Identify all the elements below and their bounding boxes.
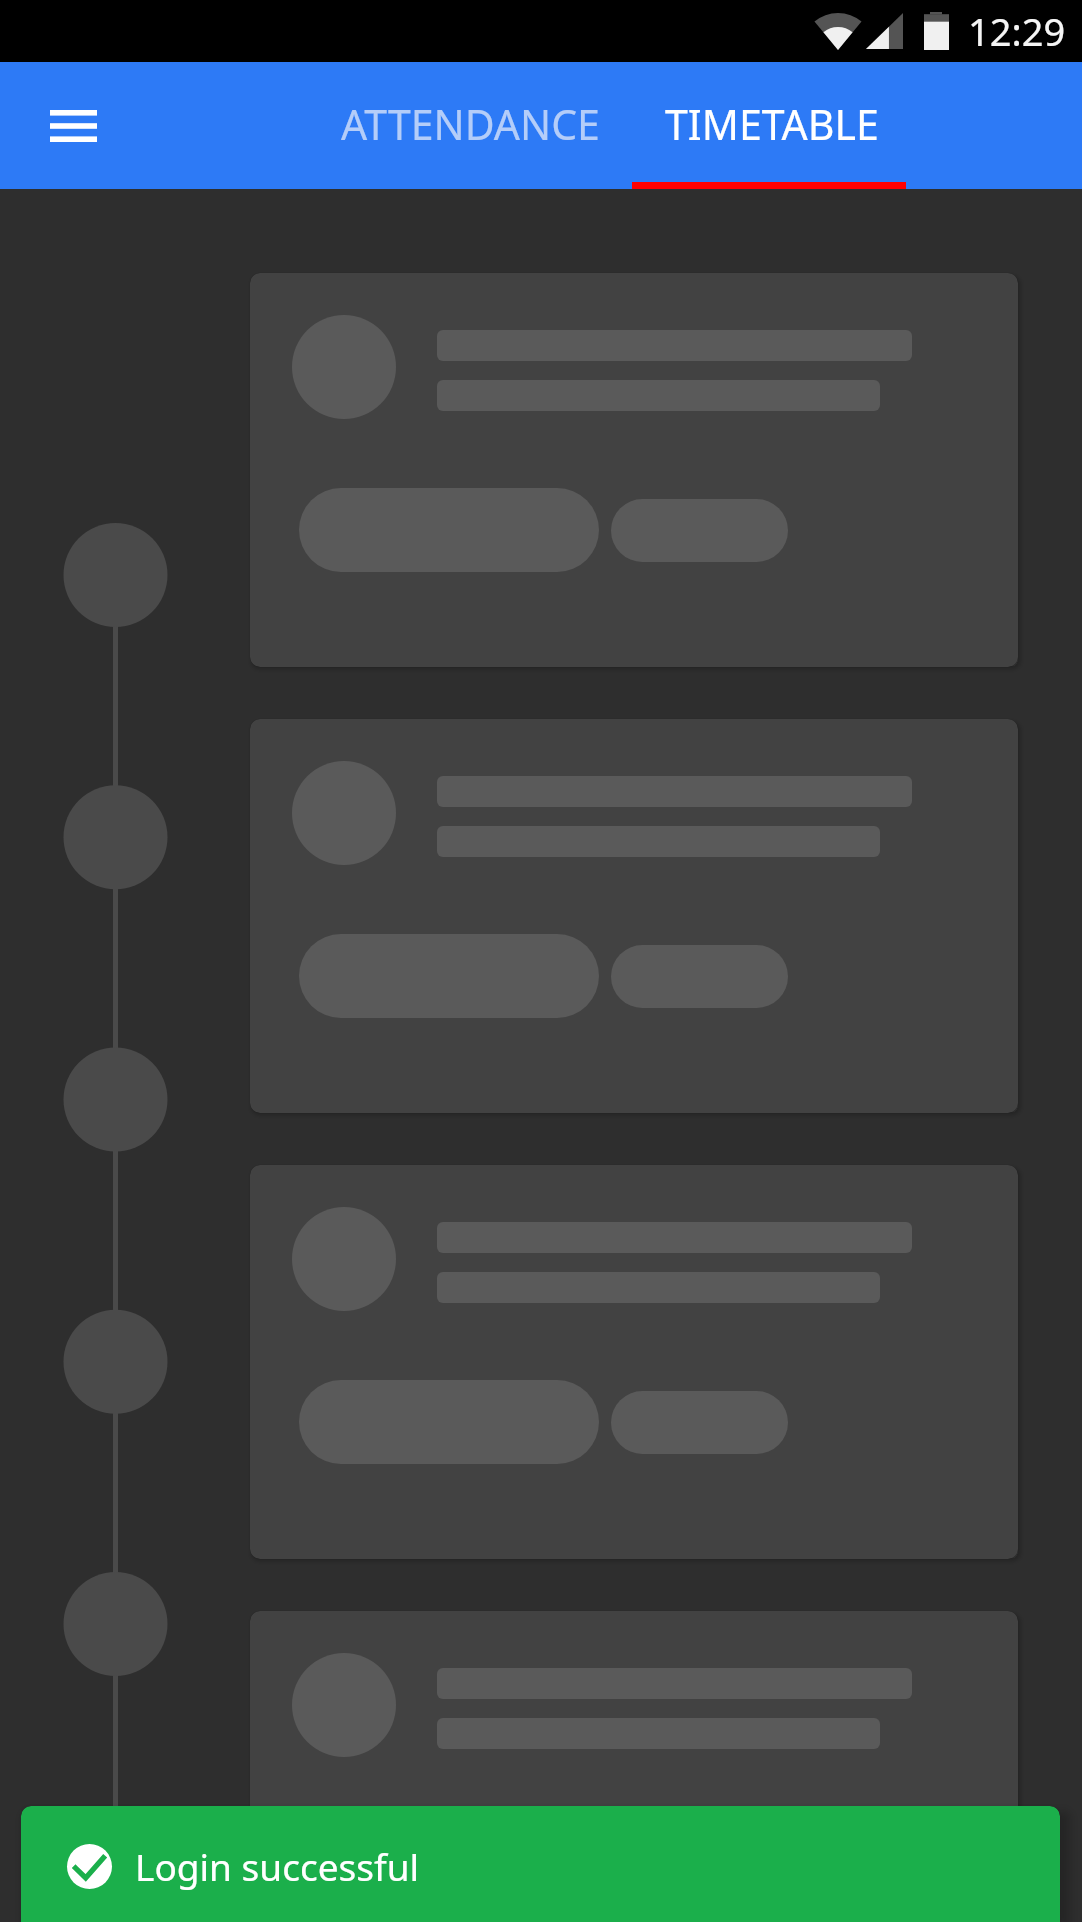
button[interactable] — [250, 1611, 1018, 1922]
button[interactable] — [250, 719, 1018, 1113]
button[interactable]: TIMETABLE — [635, 60, 909, 187]
button[interactable] — [250, 273, 1018, 667]
button[interactable]: ATTENDANCE — [320, 60, 620, 187]
button[interactable] — [250, 1165, 1018, 1559]
staticText: Login successful — [135, 1841, 420, 1891]
staticText: ATTENDANCE — [341, 96, 600, 152]
button[interactable]: Open navigation menu — [18, 71, 128, 181]
staticText: 12:29 — [968, 5, 1066, 57]
staticText: TIMETABLE — [665, 96, 879, 152]
button[interactable]: Login successful — [21, 1806, 1060, 1922]
